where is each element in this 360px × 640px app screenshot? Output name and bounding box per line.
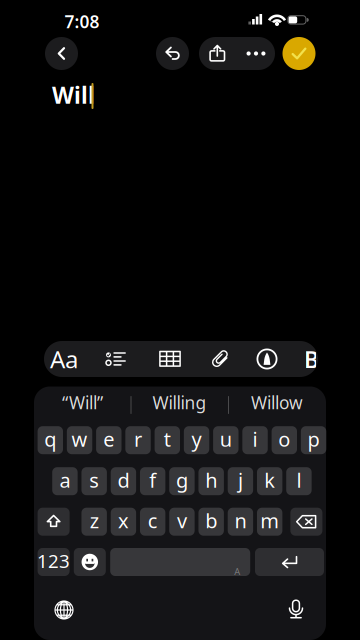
staticText: u xyxy=(220,426,232,452)
staticText: b xyxy=(205,507,217,534)
button[interactable]: f xyxy=(140,467,165,495)
button[interactable]: Done xyxy=(282,37,315,70)
staticText: h xyxy=(205,467,217,493)
button[interactable]: Emoji xyxy=(74,548,106,576)
staticText: z xyxy=(90,507,99,534)
staticText: w xyxy=(71,426,87,452)
button[interactable]: k xyxy=(257,467,282,495)
staticText: 7:08 xyxy=(64,10,99,33)
button[interactable]: Bold xyxy=(304,341,316,377)
button[interactable]: t xyxy=(155,426,180,454)
staticText: 123 xyxy=(37,548,70,573)
button[interactable]: h xyxy=(198,467,224,495)
button[interactable]: q xyxy=(38,426,63,454)
staticText: q xyxy=(44,426,56,452)
staticText: i xyxy=(252,426,257,452)
staticText: Aa xyxy=(50,343,78,375)
button[interactable]: p xyxy=(301,426,326,454)
staticText: o xyxy=(278,426,290,452)
staticText: y xyxy=(191,426,201,452)
button[interactable]: Delete xyxy=(290,508,322,536)
button[interactable]: m xyxy=(257,508,282,536)
button[interactable]: More xyxy=(237,37,275,70)
staticText: Willow xyxy=(251,391,303,414)
button[interactable]: e xyxy=(96,426,121,454)
staticText: B xyxy=(304,344,319,374)
button[interactable]: Table xyxy=(145,341,195,377)
staticText: p xyxy=(308,426,320,452)
staticText: t xyxy=(164,426,171,452)
button[interactable]: Share xyxy=(199,37,237,70)
staticText: n xyxy=(234,507,246,534)
button[interactable]: Willow xyxy=(228,390,326,415)
staticText: g xyxy=(176,467,188,493)
staticText: c xyxy=(148,507,158,534)
button[interactable]: Back xyxy=(45,37,78,70)
staticText: Will xyxy=(52,80,95,110)
button[interactable]: u xyxy=(213,426,238,454)
button[interactable]: s xyxy=(81,467,107,495)
button[interactable]: space xyxy=(110,548,250,576)
button[interactable]: i xyxy=(242,426,268,454)
button[interactable]: n xyxy=(228,508,253,536)
staticText: s xyxy=(89,467,99,493)
staticText: Willing xyxy=(152,391,206,414)
staticText: a xyxy=(59,467,70,493)
staticText: v xyxy=(177,507,187,534)
staticText: j xyxy=(238,467,243,493)
button[interactable]: j xyxy=(228,467,253,495)
staticText: “Will” xyxy=(62,391,103,414)
button[interactable]: g xyxy=(169,467,195,495)
button[interactable]: Attach xyxy=(195,341,245,377)
button[interactable]: Markup xyxy=(242,341,292,377)
button[interactable]: Dictate xyxy=(280,594,312,626)
button[interactable]: Text format xyxy=(39,341,89,377)
staticText: d xyxy=(117,467,129,493)
staticText: A xyxy=(234,565,240,578)
staticText: k xyxy=(264,467,275,493)
button[interactable]: z xyxy=(81,508,107,536)
button[interactable]: Checklist xyxy=(91,341,141,377)
button[interactable]: x xyxy=(111,508,136,536)
button[interactable]: Willing xyxy=(131,390,228,415)
staticText: x xyxy=(118,507,129,534)
staticText: r xyxy=(134,426,142,452)
staticText: e xyxy=(103,426,114,452)
staticText: l xyxy=(296,467,301,493)
staticText: m xyxy=(260,507,279,534)
button[interactable]: o xyxy=(272,426,297,454)
button[interactable]: Return xyxy=(255,548,324,576)
button[interactable]: Next keyboard xyxy=(48,594,80,626)
button[interactable]: v xyxy=(169,508,195,536)
button[interactable]: l xyxy=(286,467,312,495)
button[interactable]: w xyxy=(67,426,92,454)
button[interactable]: b xyxy=(198,508,224,536)
button[interactable]: y xyxy=(184,426,209,454)
button[interactable]: Shift xyxy=(38,508,70,536)
staticText: f xyxy=(149,467,156,493)
button[interactable]: c xyxy=(140,508,165,536)
button[interactable]: Undo xyxy=(156,37,189,70)
button[interactable]: a xyxy=(52,467,78,495)
button[interactable]: 123 xyxy=(38,548,70,576)
button[interactable]: r xyxy=(125,426,151,454)
button[interactable]: “Will” xyxy=(34,390,131,415)
button[interactable]: d xyxy=(111,467,136,495)
